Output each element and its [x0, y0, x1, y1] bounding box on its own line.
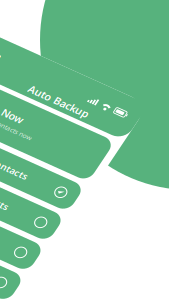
- button[interactable]: Delete contacts: [8, 213, 169, 244]
- staticText: Delete contacts: [19, 222, 90, 235]
- button[interactable]: Restore your contacts: [8, 103, 169, 134]
- staticText: Backup Now: [19, 61, 83, 75]
- staticText: Restore your contacts: [19, 113, 119, 125]
- staticText: Backup your contacts now: [19, 77, 100, 85]
- button[interactable]: Manage your contacts: [8, 140, 169, 171]
- staticText: Share your contacts: [19, 186, 109, 198]
- button[interactable]: Backup Now: [8, 49, 169, 98]
- button[interactable]: Share your contacts: [8, 176, 169, 207]
- staticText: Backup settings: [19, 259, 92, 271]
- staticText: Manage your contacts: [19, 149, 120, 162]
- button[interactable]: Backup settings: [8, 249, 169, 280]
